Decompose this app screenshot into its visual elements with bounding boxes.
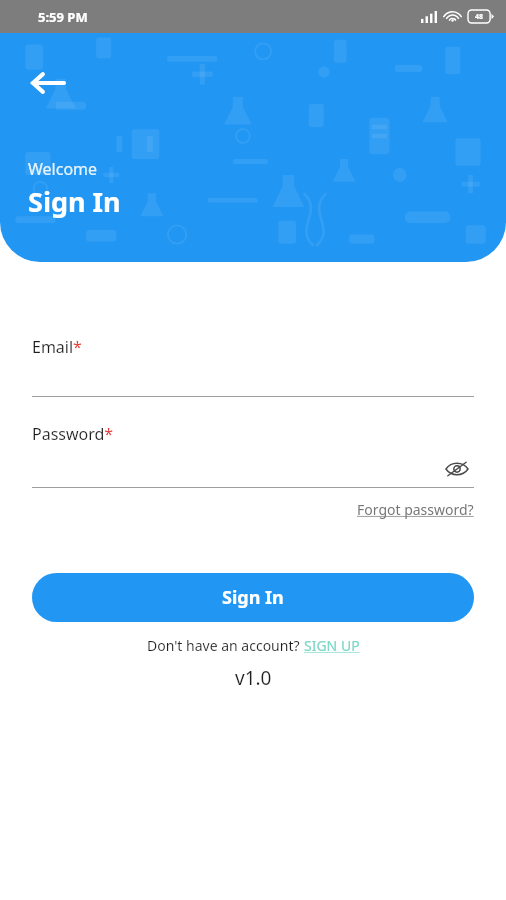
button[interactable]: Forgot password?	[357, 500, 474, 519]
staticText: Email*	[32, 336, 82, 358]
staticText: Password*	[32, 423, 114, 445]
staticText: 5:59 PM	[38, 8, 88, 26]
staticText: Forgot password?	[357, 500, 474, 519]
staticText: v1.0	[235, 665, 272, 691]
button[interactable]: Sign In	[32, 573, 474, 622]
staticText: Sign In	[28, 183, 121, 220]
staticText: Welcome	[28, 158, 98, 180]
staticText: Don't have an account?	[147, 636, 304, 655]
staticText: Sign In	[222, 585, 284, 610]
staticText: 48	[475, 12, 484, 22]
button[interactable]: Back	[24, 59, 72, 107]
button[interactable]: Show password	[440, 455, 474, 483]
staticText: SIGN UP	[304, 636, 360, 655]
button[interactable]: Don't have an account?	[147, 636, 360, 655]
